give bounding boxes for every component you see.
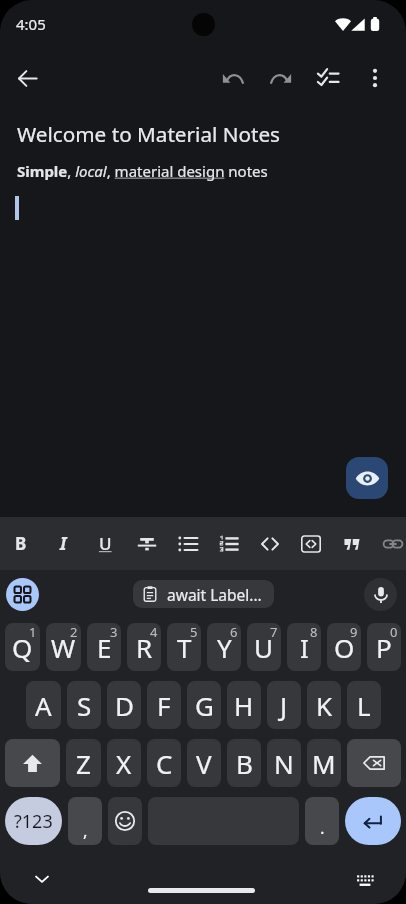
staticText: 1 [29,623,37,641]
button[interactable]: Code [249,517,290,570]
staticText: 2 [70,623,78,641]
button[interactable]: Italic [42,517,84,570]
button[interactable]: H [227,681,261,729]
staticText: 6 [230,623,238,641]
button[interactable]: E [87,623,121,671]
button[interactable]: B [227,739,261,787]
staticText: S [77,688,92,723]
button[interactable]: Bulleted list [167,517,208,570]
staticText: B [236,746,253,781]
button[interactable]: Underline [84,517,126,570]
button[interactable]: F [147,681,181,729]
staticText: X [116,746,132,781]
button[interactable]: , [68,797,102,845]
button[interactable]: Z [66,739,101,787]
button[interactable]: W [46,623,81,671]
button[interactable]: M [307,739,341,787]
button[interactable]: Quote [331,517,372,570]
staticText: Simple, local, material design notes [17,161,268,181]
button[interactable]: A [26,681,61,729]
staticText: await Label... [167,584,262,605]
button[interactable]: Checklist [305,55,351,101]
staticText: M [312,746,336,781]
button[interactable]: Bold [0,517,42,570]
button[interactable]: U [247,623,281,671]
button[interactable]: D [107,681,141,729]
button[interactable]: Shift [5,739,60,787]
button[interactable]: Code block [290,517,331,570]
button[interactable]: N [267,739,301,787]
staticText: . [320,816,325,839]
button[interactable]: S [67,681,101,729]
staticText: F [157,688,171,723]
button[interactable]: Redo [258,55,304,101]
button[interactable]: Enter [345,797,401,845]
staticText: I [60,532,67,555]
staticText: 0 [390,623,398,641]
button[interactable]: Back [5,56,49,100]
staticText: A [35,688,52,723]
button[interactable]: Link [372,517,406,570]
staticText: N [274,746,294,781]
button[interactable]: . [305,797,339,845]
staticText: R [136,630,153,665]
staticText: U [254,630,274,665]
staticText: 4:05 [16,14,46,34]
button[interactable]: Q [5,623,40,671]
staticText: Y [217,630,232,665]
button[interactable]: J [267,681,301,729]
staticText: I [300,630,309,665]
button[interactable]: V [187,739,221,787]
staticText: D [115,688,134,723]
button[interactable]: K [307,681,341,729]
button[interactable]: Strikethrough [126,517,167,570]
staticText: J [280,688,288,723]
staticText: L [357,688,371,723]
button[interactable]: Switch keyboard [349,864,380,895]
staticText: T [177,630,192,665]
button[interactable]: Voice input [364,578,397,611]
staticText: 3 [110,623,118,641]
button[interactable]: Numbered list [208,517,249,570]
staticText: V [196,746,212,781]
button[interactable]: Preview [346,457,388,499]
button[interactable]: G [187,681,221,729]
button[interactable]: ?123 [5,797,62,845]
button[interactable]: Y [207,623,241,671]
button[interactable]: await Label... [133,580,274,608]
button[interactable]: R [127,623,161,671]
button[interactable]: T [167,623,201,671]
staticText: ?123 [14,809,53,834]
staticText: Welcome to Material Notes [17,120,281,148]
staticText: E [97,630,112,665]
button[interactable]: I [287,623,321,671]
button[interactable]: Hide keyboard [26,863,58,895]
staticText: H [234,688,254,723]
staticText: Q [12,630,33,665]
staticText: U [99,532,112,555]
staticText: Z [76,746,91,781]
button[interactable]: O [327,623,361,671]
button[interactable]: More options [352,55,398,101]
staticText: 5 [190,623,198,641]
button[interactable]: C [147,739,181,787]
button[interactable]: X [107,739,141,787]
staticText: C [156,746,173,781]
staticText: O [334,630,355,665]
button[interactable]: Undo [210,55,256,101]
staticText: 7 [270,623,278,641]
button[interactable]: Apps [6,578,39,611]
staticText: , [83,819,88,842]
staticText: 8 [310,623,318,641]
button[interactable]: L [347,681,381,729]
button[interactable]: P [367,623,401,671]
staticText: 9 [350,623,358,641]
staticText: 4 [150,623,158,641]
staticText: W [51,630,76,665]
staticText: G [195,688,214,723]
staticText: P [376,630,392,665]
button[interactable]: Backspace [347,739,401,787]
button[interactable]: Emoji [108,797,142,845]
staticText: K [316,688,333,723]
